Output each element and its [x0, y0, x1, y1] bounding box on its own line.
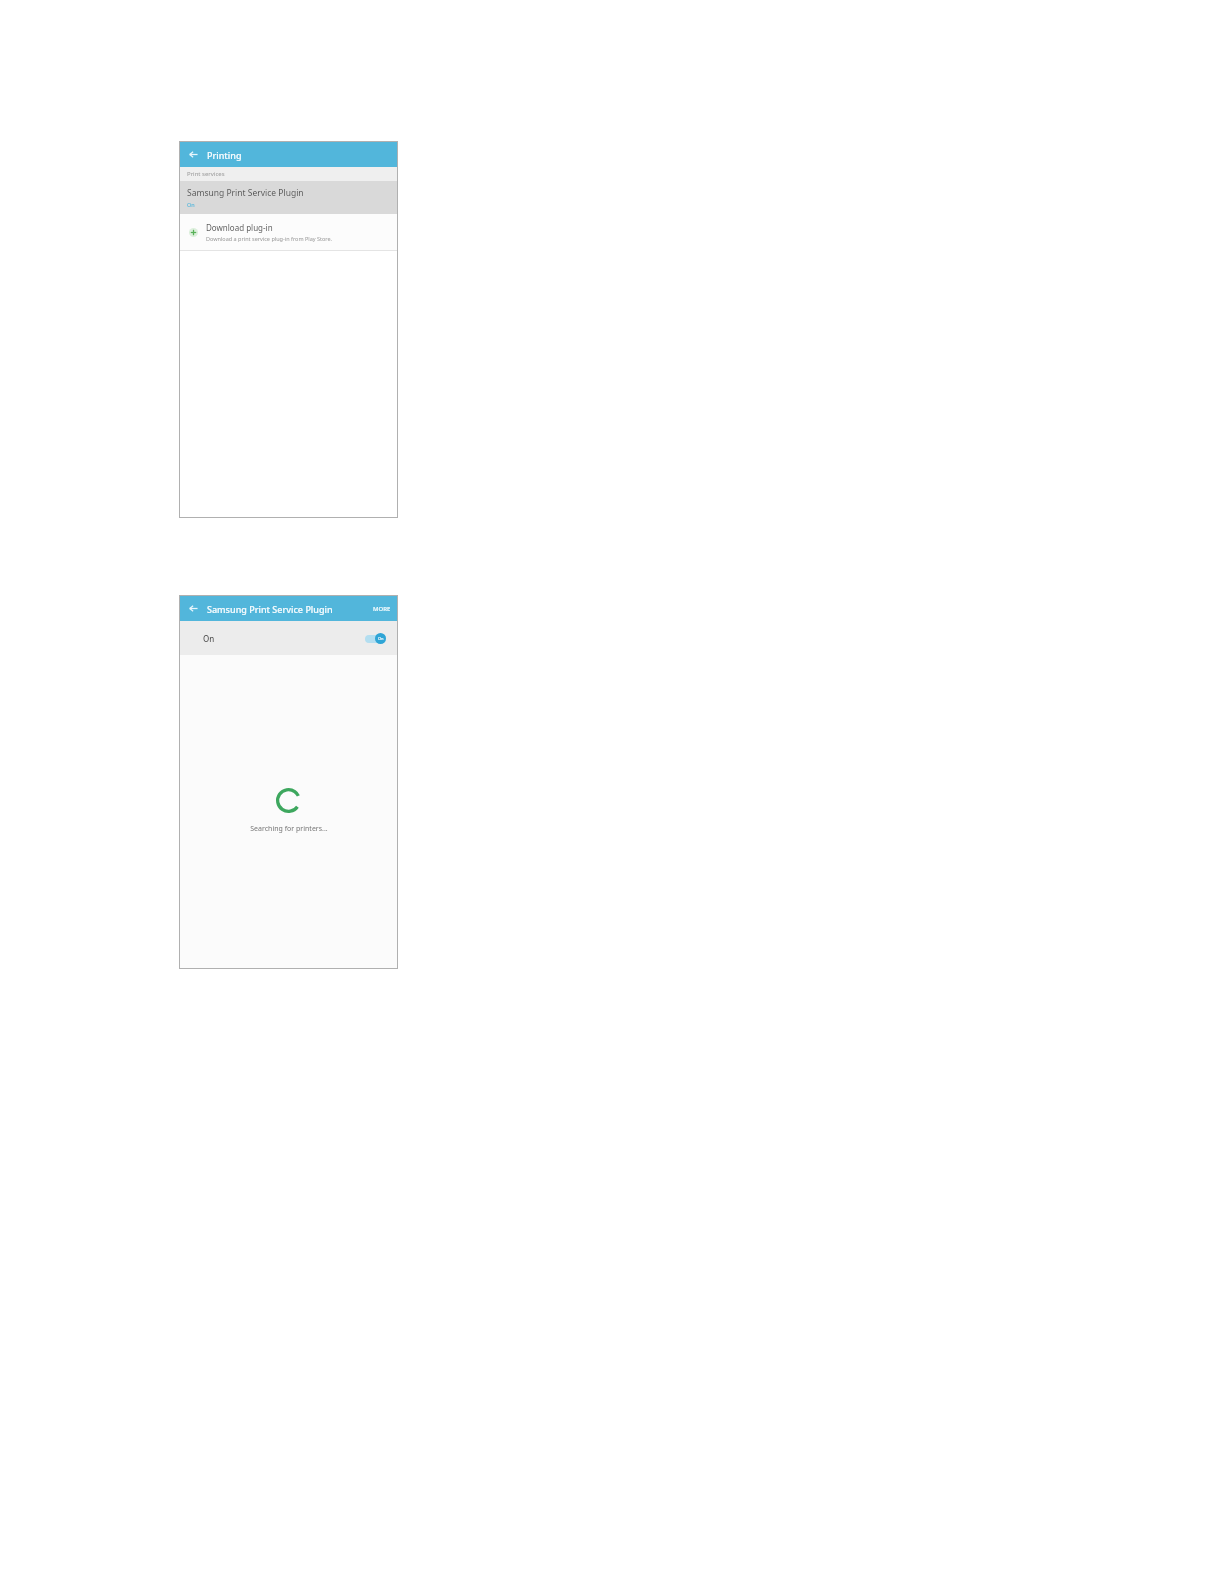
staticText: Printing: [207, 149, 242, 161]
button[interactable]: Samsung Print Service Plugin: [180, 181, 397, 214]
button[interactable]: Back: [185, 600, 202, 617]
staticText: Samsung Print Service Plugin: [187, 187, 304, 199]
button[interactable]: Back: [185, 146, 202, 163]
staticText: On: [378, 636, 384, 641]
staticText: Samsung Print Service Plugin: [207, 603, 333, 615]
staticText: On: [187, 201, 195, 208]
button[interactable]: Toggle print service: [365, 633, 386, 644]
staticText: Download a print service plug-in from Pl…: [206, 235, 333, 242]
staticText: Print services: [187, 170, 225, 178]
staticText: On: [203, 633, 215, 644]
staticText: Searching for printers...: [250, 824, 328, 834]
staticText: Download plug-in: [206, 222, 273, 233]
button[interactable]: MORE: [367, 600, 397, 618]
button[interactable]: On: [180, 621, 397, 655]
staticText: MORE: [373, 605, 391, 613]
button[interactable]: Download plug-in: [180, 214, 397, 250]
